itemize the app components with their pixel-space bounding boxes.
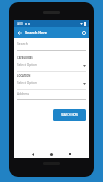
staticText: Select Option	[17, 63, 37, 67]
staticText: CATEGORIES	[17, 56, 33, 60]
button[interactable]: SEARCH NOW	[53, 109, 86, 121]
button[interactable]	[49, 152, 53, 156]
staticText: Select Option	[17, 81, 37, 85]
staticText: 4:00	[17, 22, 23, 26]
button[interactable]: Select Option	[14, 80, 89, 89]
staticText: Search	[17, 41, 28, 46]
staticText: SEARCH NOW	[61, 113, 78, 117]
button[interactable]	[80, 29, 87, 36]
staticText: Search Here	[25, 30, 48, 35]
staticText: LOCATION	[17, 74, 31, 78]
button[interactable]	[31, 152, 35, 156]
button[interactable]	[68, 152, 72, 156]
button[interactable]	[17, 30, 22, 35]
button[interactable]: Select Option	[14, 62, 89, 71]
staticText: Address	[17, 92, 30, 96]
